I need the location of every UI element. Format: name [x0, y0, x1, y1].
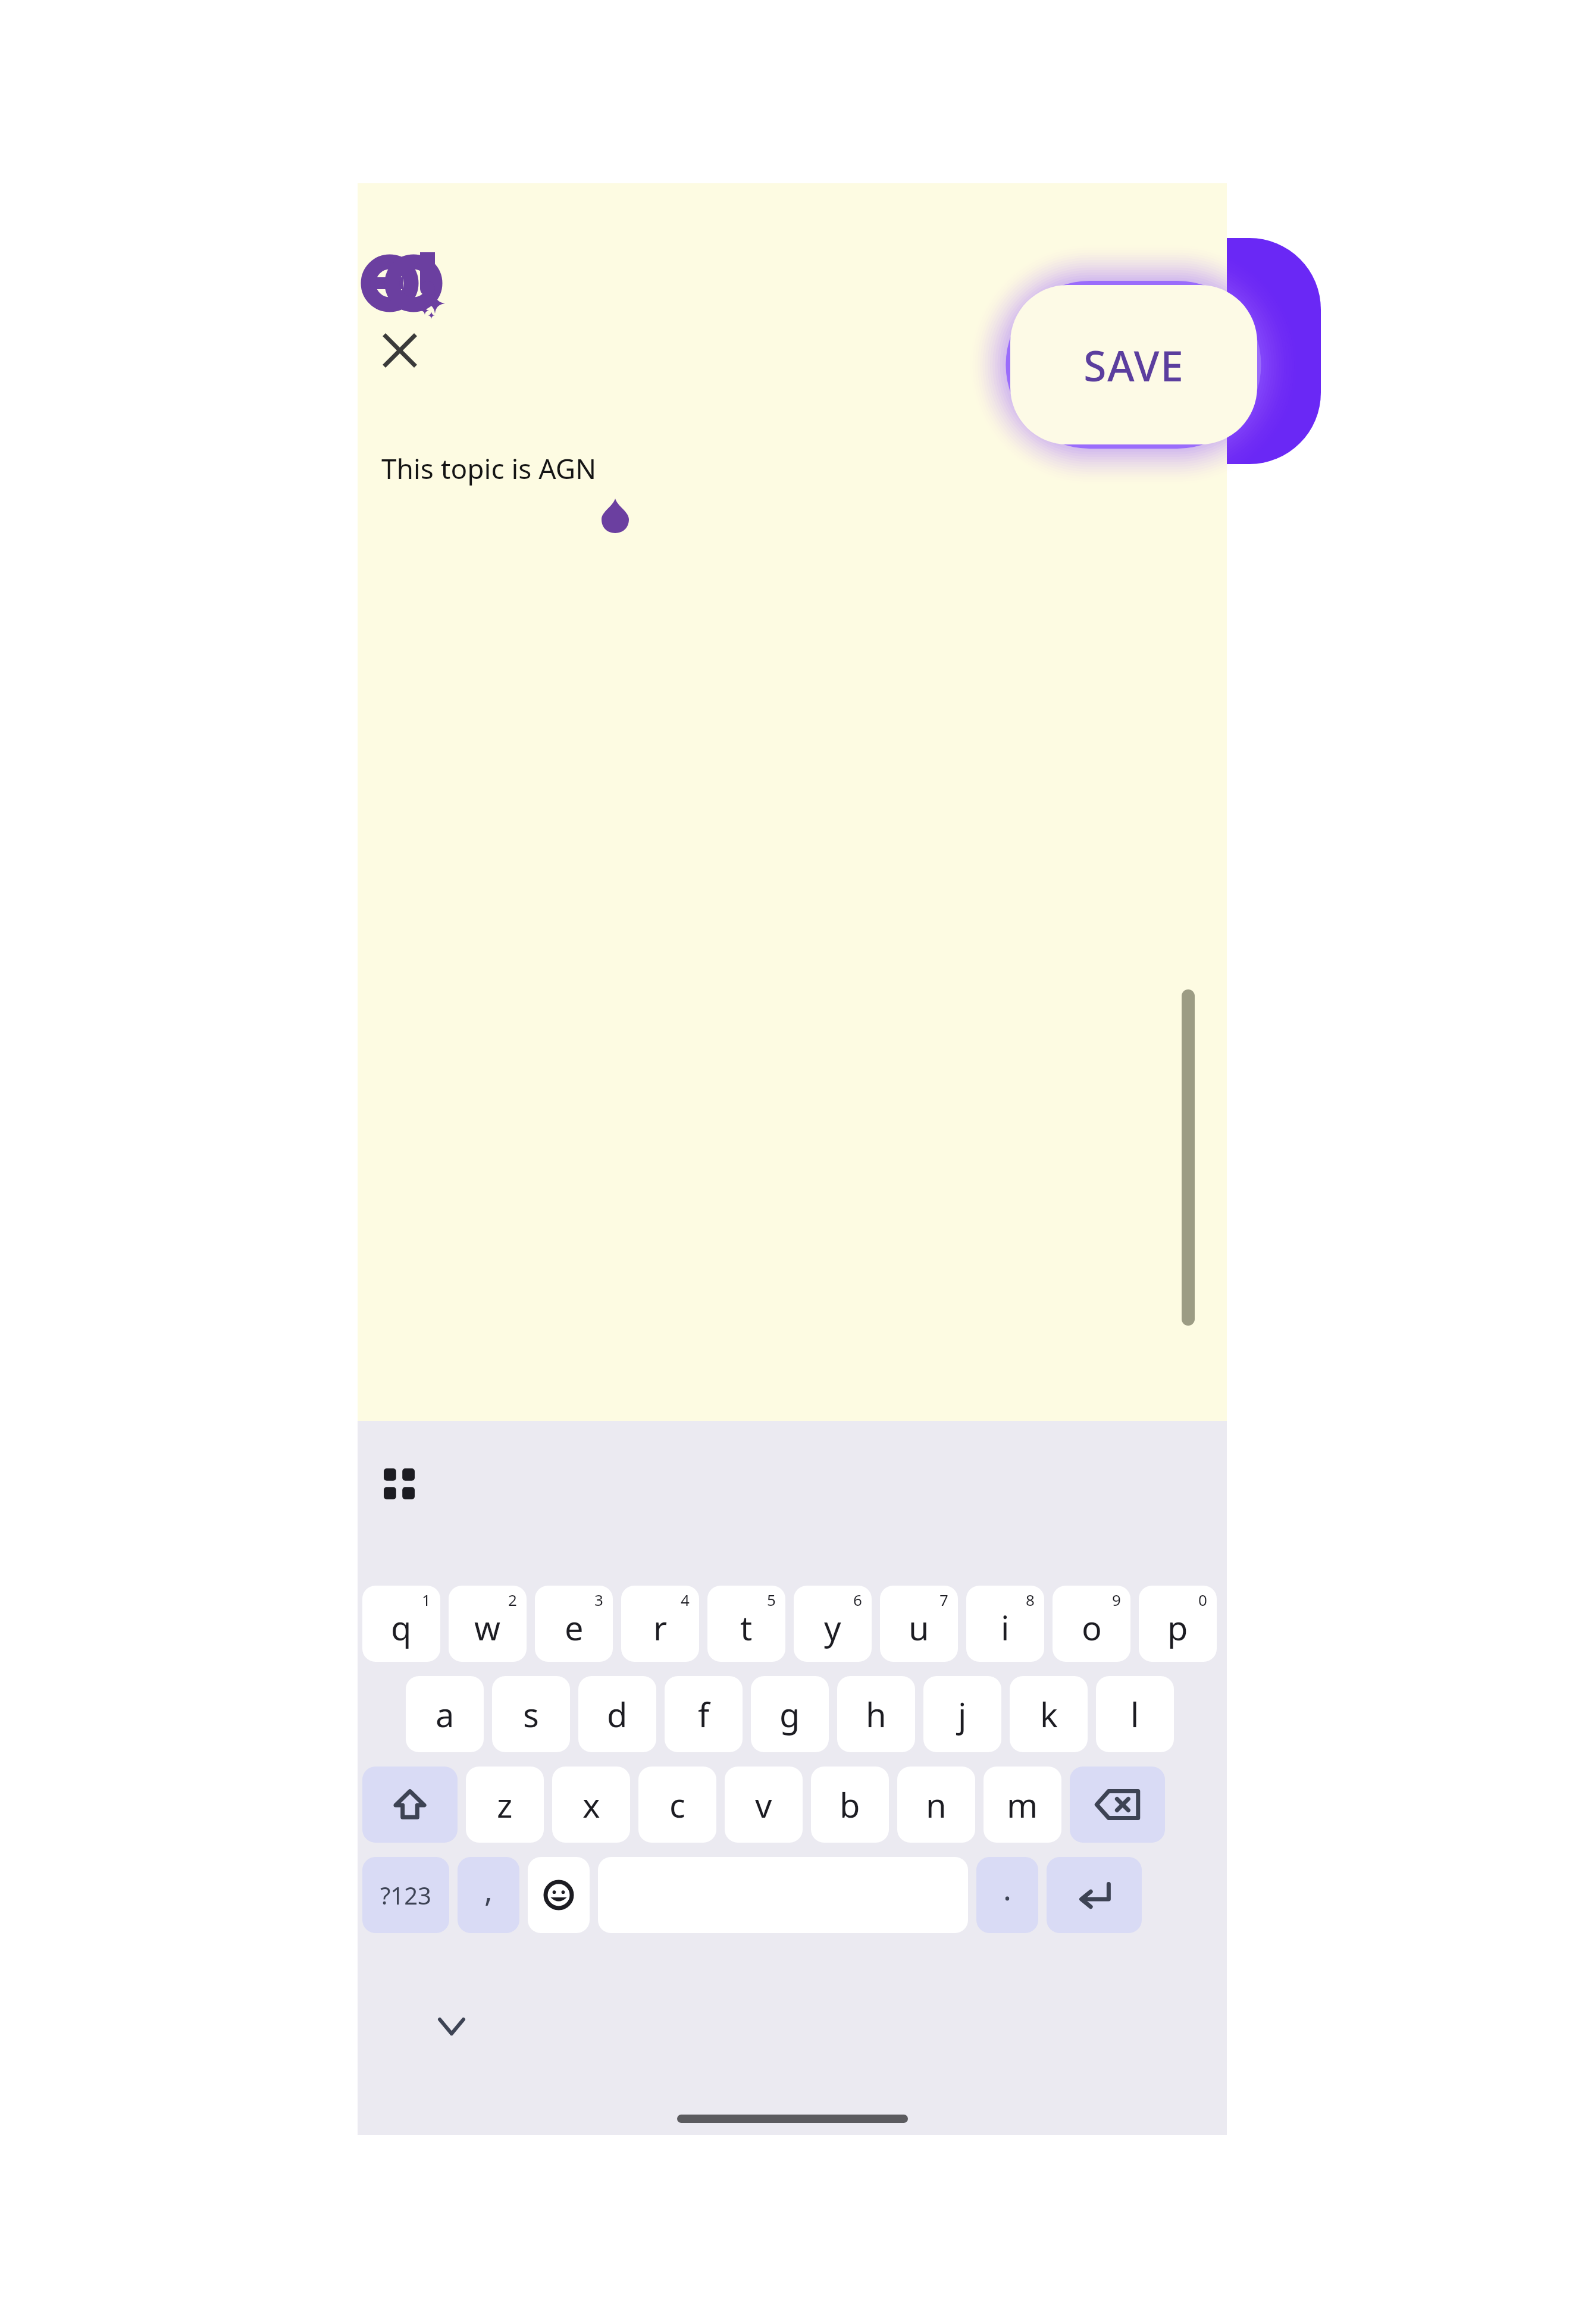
- staticText: o: [1082, 1605, 1102, 1650]
- staticText: g: [779, 1692, 800, 1737]
- button[interactable]: g: [751, 1676, 829, 1752]
- button[interactable]: Enter: [1047, 1857, 1142, 1933]
- staticText: m: [1007, 1782, 1038, 1827]
- button[interactable]: v: [725, 1767, 803, 1843]
- button[interactable]: d: [578, 1676, 656, 1752]
- staticText: w: [474, 1605, 501, 1650]
- staticText: b: [840, 1782, 860, 1827]
- button[interactable]: i: [966, 1586, 1044, 1662]
- button[interactable]: m: [984, 1767, 1061, 1843]
- button[interactable]: n: [897, 1767, 975, 1843]
- button[interactable]: s: [492, 1676, 570, 1752]
- staticText: 5: [767, 1589, 776, 1610]
- staticText: 8: [1026, 1589, 1035, 1610]
- staticText: f: [698, 1692, 710, 1737]
- button[interactable]: App logo: [365, 249, 454, 326]
- button[interactable]: j: [923, 1676, 1001, 1752]
- button[interactable]: r: [621, 1586, 699, 1662]
- button[interactable]: q: [362, 1586, 440, 1662]
- staticText: .: [1003, 1867, 1011, 1909]
- staticText: v: [755, 1782, 772, 1827]
- button[interactable]: Backspace: [1070, 1767, 1165, 1843]
- staticText: ?123: [380, 1879, 431, 1911]
- button[interactable]: Emoji: [528, 1857, 590, 1933]
- staticText: 3: [594, 1589, 603, 1610]
- button[interactable]: Hide keyboard: [430, 2005, 473, 2048]
- staticText: 0: [1198, 1589, 1207, 1610]
- button[interactable]: l: [1096, 1676, 1174, 1752]
- staticText: 4: [681, 1589, 690, 1610]
- staticText: t: [740, 1605, 753, 1650]
- button[interactable]: y: [794, 1586, 872, 1662]
- staticText: p: [1167, 1605, 1188, 1650]
- staticText: x: [582, 1782, 600, 1827]
- staticText: i: [1001, 1605, 1010, 1650]
- staticText: j: [958, 1692, 967, 1737]
- button[interactable]: t: [707, 1586, 785, 1662]
- button[interactable]: p: [1139, 1586, 1217, 1662]
- button[interactable]: b: [811, 1767, 889, 1843]
- button[interactable]: Comma: [458, 1857, 519, 1933]
- button[interactable]: o: [1053, 1586, 1130, 1662]
- button[interactable]: a: [406, 1676, 484, 1752]
- staticText: n: [926, 1782, 947, 1827]
- button[interactable]: Period: [976, 1857, 1038, 1933]
- staticText: e: [565, 1605, 584, 1650]
- staticText: h: [866, 1692, 887, 1737]
- button[interactable]: Close: [374, 325, 425, 376]
- staticText: d: [607, 1692, 628, 1737]
- staticText: 7: [939, 1589, 948, 1610]
- staticText: q: [391, 1605, 412, 1650]
- staticText: This topic is AGN: [381, 450, 597, 487]
- staticText: r: [653, 1605, 668, 1650]
- staticText: s: [523, 1692, 539, 1737]
- staticText: ,: [484, 1868, 493, 1910]
- button[interactable]: f: [665, 1676, 743, 1752]
- staticText: SAVE: [1083, 337, 1185, 393]
- staticText: k: [1040, 1692, 1058, 1737]
- button[interactable]: k: [1010, 1676, 1088, 1752]
- button[interactable]: z: [466, 1767, 544, 1843]
- staticText: 1: [422, 1589, 431, 1610]
- button[interactable]: Keyboard options: [371, 1455, 428, 1512]
- staticText: 2: [508, 1589, 517, 1610]
- staticText: z: [497, 1782, 513, 1827]
- button[interactable]: h: [837, 1676, 915, 1752]
- staticText: 9: [1112, 1589, 1121, 1610]
- staticText: c: [669, 1782, 685, 1827]
- staticText: y: [824, 1605, 841, 1650]
- button[interactable]: SAVE: [985, 258, 1282, 472]
- button[interactable]: c: [638, 1767, 716, 1843]
- button[interactable]: u: [880, 1586, 958, 1662]
- staticText: l: [1130, 1692, 1139, 1737]
- staticText: u: [909, 1605, 929, 1650]
- button[interactable]: w: [449, 1586, 527, 1662]
- staticText: a: [436, 1692, 455, 1737]
- staticText: 6: [853, 1589, 862, 1610]
- button[interactable]: Shift: [362, 1767, 458, 1843]
- button[interactable]: Symbols: [362, 1857, 449, 1933]
- button[interactable]: e: [535, 1586, 613, 1662]
- button[interactable]: x: [552, 1767, 630, 1843]
